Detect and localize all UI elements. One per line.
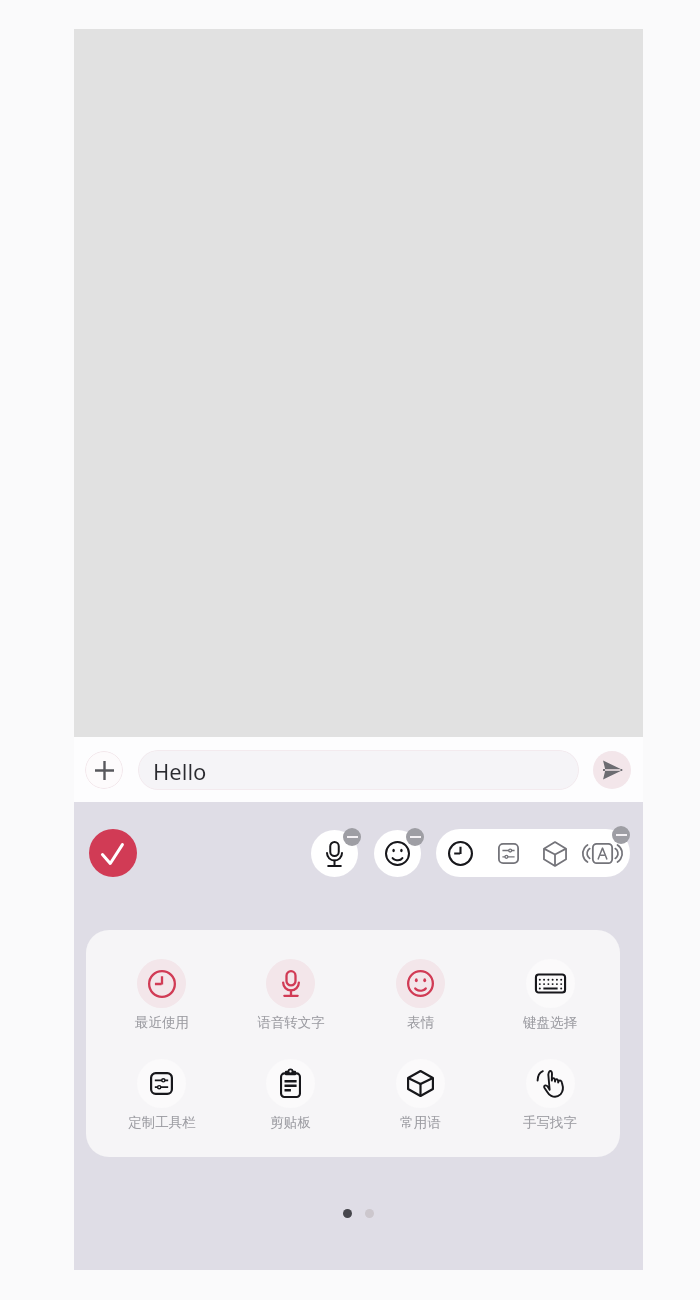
button[interactable]: 定制工具栏 [97, 1059, 226, 1131]
button[interactable]: Add [85, 751, 123, 789]
button[interactable]: 键盘选择 [485, 959, 615, 1031]
button[interactable]: 手写找字 [485, 1059, 615, 1131]
button[interactable]: Remove [612, 826, 630, 844]
staticText: 最近使用 [135, 1014, 189, 1031]
button[interactable]: 语音转文字 [226, 959, 355, 1031]
button[interactable]: Emoji [374, 830, 421, 877]
staticText: 表情 [407, 1014, 434, 1031]
button[interactable]: Voice input [311, 830, 358, 877]
staticText: 手写找字 [523, 1114, 577, 1131]
button[interactable]: 常用语 [355, 1059, 485, 1131]
button[interactable]: Remove [406, 828, 424, 846]
button[interactable]: Hello [138, 750, 579, 790]
staticText: 语音转文字 [257, 1014, 325, 1031]
staticText: 剪贴板 [270, 1114, 311, 1131]
button[interactable]: Confirm [89, 829, 137, 877]
button[interactable] [436, 829, 630, 877]
staticText: 常用语 [400, 1114, 441, 1131]
button[interactable]: 剪贴板 [226, 1059, 355, 1131]
staticText: Hello [153, 756, 207, 786]
staticText: 定制工具栏 [128, 1114, 196, 1131]
button[interactable]: Remove [343, 828, 361, 846]
button[interactable]: Send [593, 751, 631, 789]
staticText: 键盘选择 [523, 1014, 577, 1031]
button[interactable]: 表情 [355, 959, 485, 1031]
button[interactable]: 最近使用 [97, 959, 226, 1031]
